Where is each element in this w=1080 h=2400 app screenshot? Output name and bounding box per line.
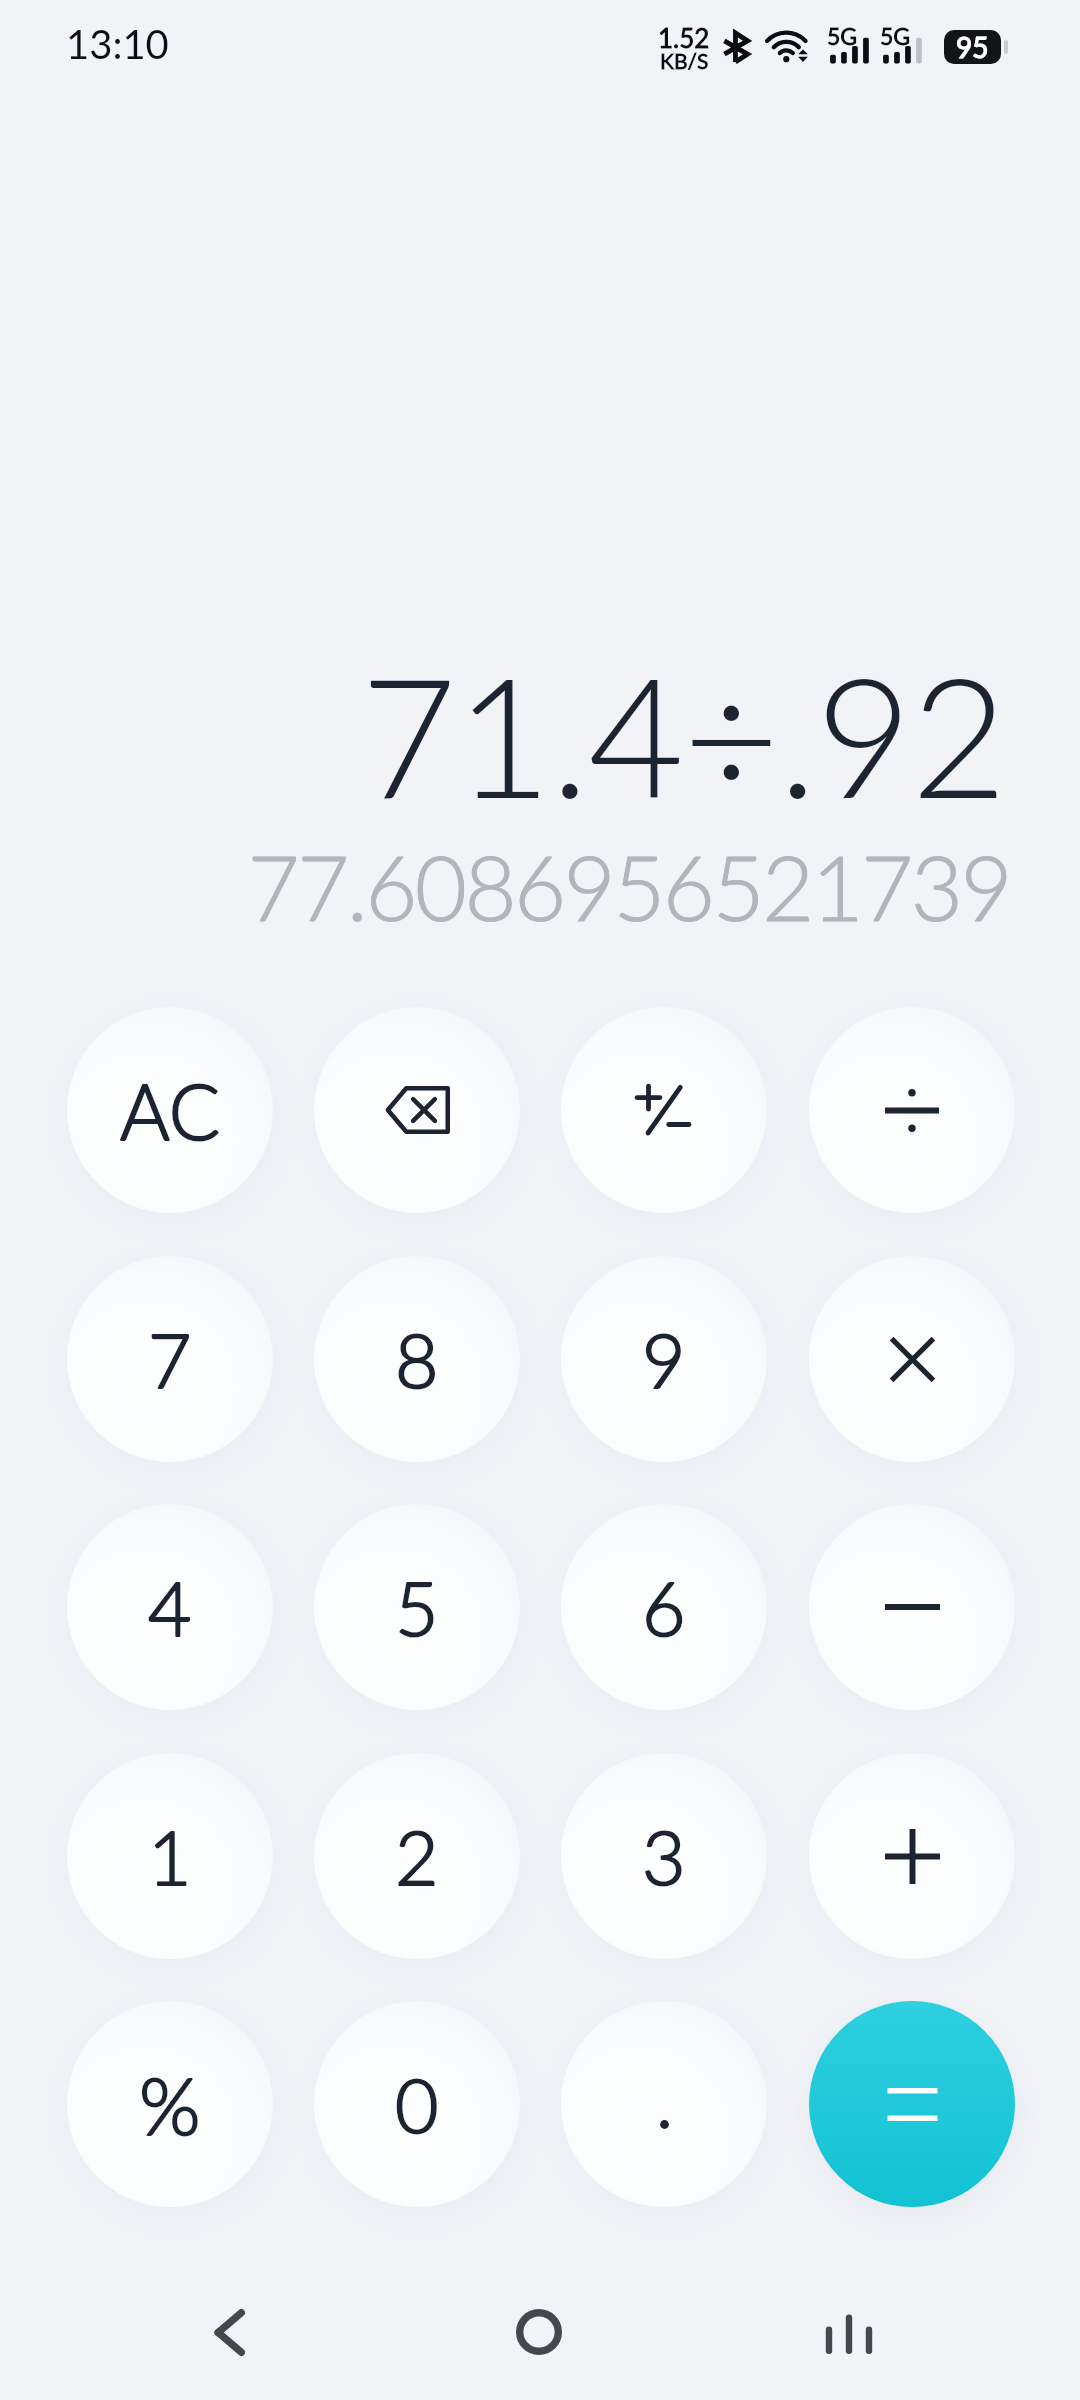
button[interactable]: 2 (314, 1753, 520, 1959)
staticText: 9 (642, 1314, 686, 1404)
button[interactable]: 7 (67, 1256, 273, 1462)
staticText: 95 (956, 30, 989, 64)
staticText: 71.4÷.92 (0, 634, 1006, 833)
staticText: 5 (395, 1562, 439, 1652)
staticText: 6 (642, 1562, 686, 1652)
staticText: 77.6086956521739 (0, 832, 1010, 940)
staticText: 8 (395, 1314, 439, 1404)
button[interactable] (809, 1007, 1015, 1213)
staticText: % (139, 2057, 201, 2152)
button[interactable]: Back (169, 2272, 289, 2392)
button[interactable]: 9 (561, 1256, 767, 1462)
staticText: 5G (880, 22, 911, 50)
button[interactable]: 4 (67, 1504, 273, 1710)
staticText: 8 (395, 1314, 439, 1404)
staticText: 4 (148, 1562, 192, 1652)
staticText: 77.6086956521739 (0, 832, 1010, 940)
button[interactable]: Recents (789, 2272, 909, 2392)
button[interactable]: 0 (314, 2001, 520, 2207)
staticText: % (139, 2057, 201, 2152)
staticText: 1 (148, 1811, 192, 1901)
button[interactable] (314, 1007, 520, 1213)
staticText: AC (120, 1065, 221, 1156)
button[interactable]: 3 (561, 1753, 767, 1959)
staticText: 1.52 (658, 22, 710, 53)
staticText: 4 (148, 1562, 192, 1652)
staticText: 3 (642, 1811, 686, 1901)
staticText: 7 (148, 1314, 192, 1404)
button[interactable] (809, 1753, 1015, 1959)
staticText: 0 (395, 2059, 439, 2149)
button[interactable] (809, 1504, 1015, 1710)
staticText: 9 (642, 1314, 686, 1404)
button[interactable]: Home (479, 2272, 599, 2392)
staticText: 5G (827, 22, 858, 50)
button[interactable]: 5 (314, 1504, 520, 1710)
staticText: 2 (395, 1811, 439, 1901)
button[interactable]: 8 (314, 1256, 520, 1462)
button[interactable]: % (67, 2001, 273, 2207)
staticText: 6 (642, 1562, 686, 1652)
button[interactable]: 6 (561, 1504, 767, 1710)
button[interactable] (809, 2001, 1015, 2207)
staticText: 13:10 (66, 20, 169, 68)
button[interactable] (561, 2001, 767, 2207)
button[interactable] (561, 1007, 767, 1213)
staticText: 7 (148, 1314, 192, 1404)
staticText: KB/S (660, 48, 709, 73)
button[interactable] (809, 1256, 1015, 1462)
staticText: 0 (395, 2059, 439, 2149)
button[interactable]: 1 (67, 1753, 273, 1959)
button[interactable]: AC (67, 1007, 273, 1213)
staticText: 5 (395, 1562, 439, 1652)
staticText: 3 (642, 1811, 686, 1901)
staticText: 2 (395, 1811, 439, 1901)
staticText: AC (120, 1065, 221, 1156)
staticText: 1 (148, 1811, 192, 1901)
